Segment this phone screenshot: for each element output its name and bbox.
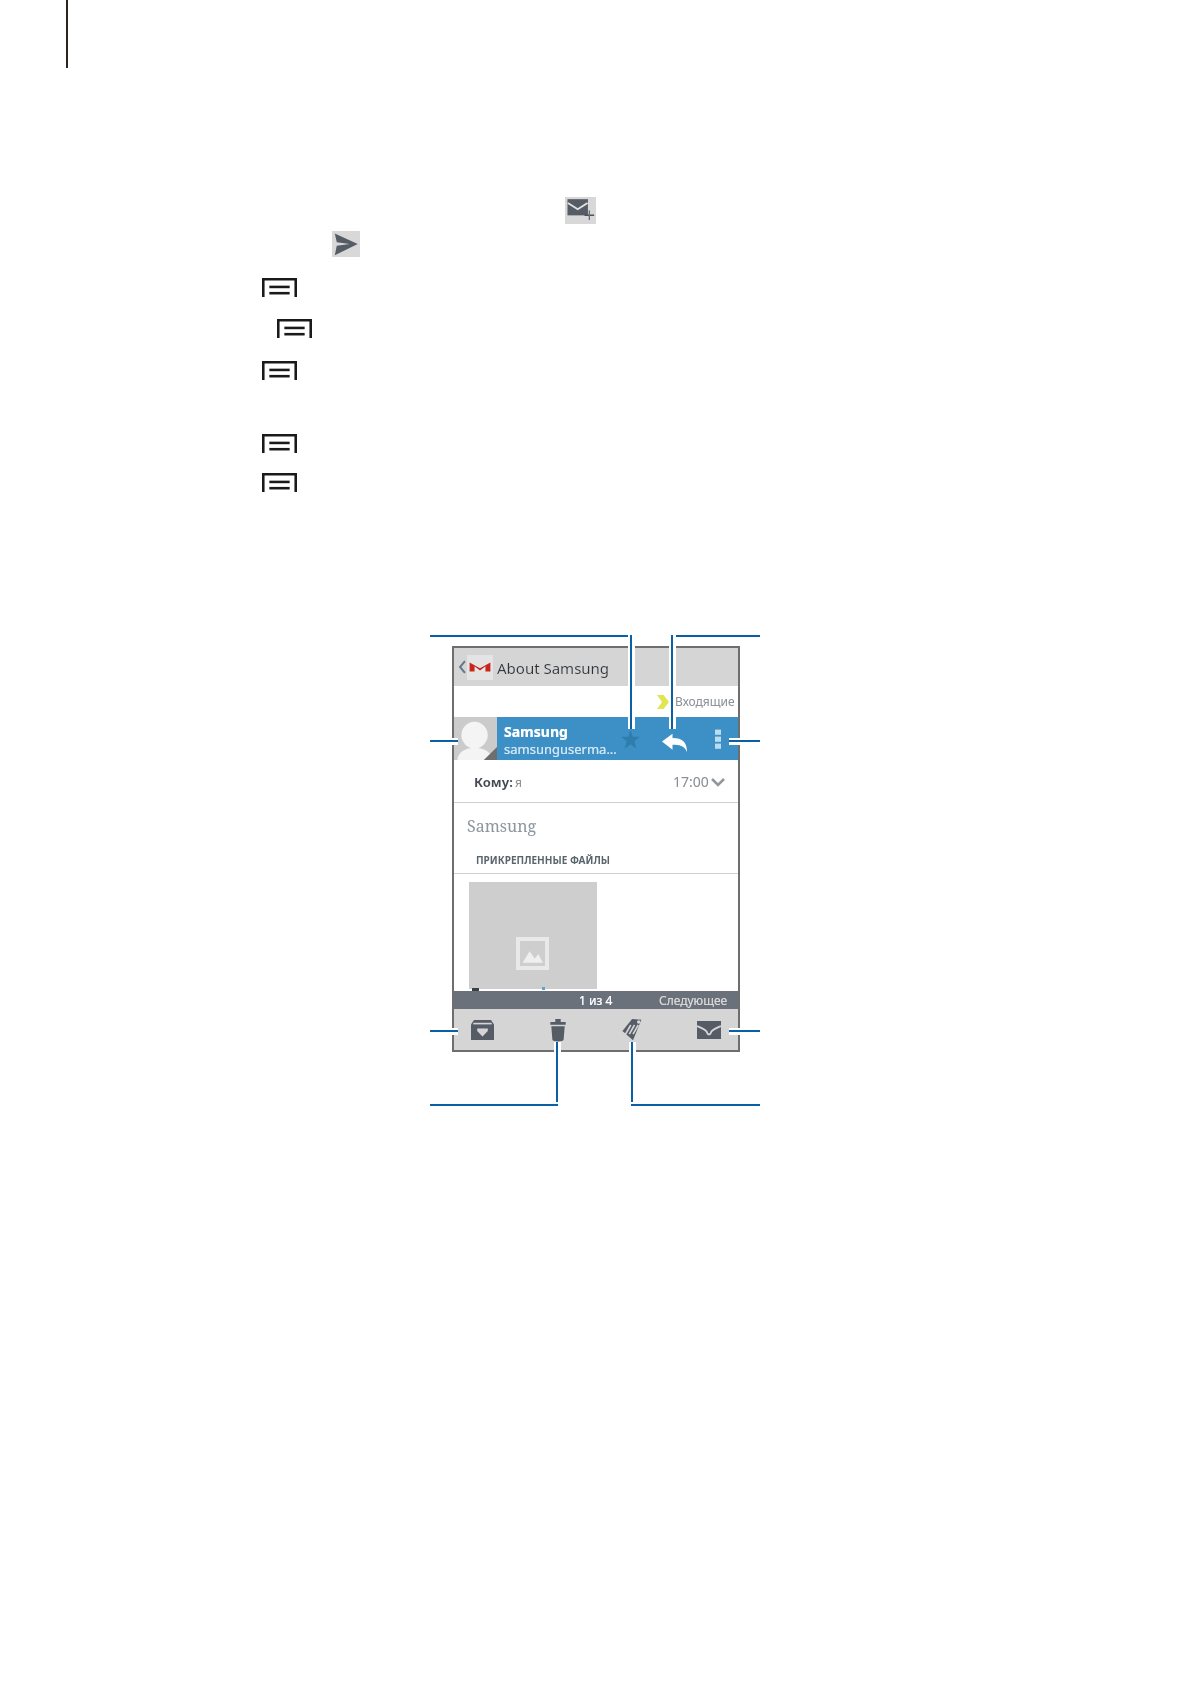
button[interactable]: Menu key [262, 473, 297, 492]
button[interactable]: More options [709, 725, 727, 752]
button[interactable]: Samsung [467, 815, 537, 837]
staticText: Следующее [659, 992, 728, 1008]
button[interactable]: Gmail [467, 655, 493, 680]
staticText: Samsung [504, 722, 568, 741]
button[interactable]: Menu key [262, 434, 297, 453]
staticText: ПРИКРЕПЛЕННЫЕ ФАЙЛЫ [476, 853, 610, 867]
button[interactable]: Compose email [565, 197, 596, 224]
button[interactable]: Menu key [262, 361, 297, 380]
staticText: Кому: [474, 773, 513, 791]
button[interactable]: Mark as unread [680, 1014, 738, 1046]
button[interactable]: Delete [529, 1014, 587, 1046]
button[interactable]: Change labels [604, 1014, 662, 1046]
button[interactable]: Кому: [453, 760, 739, 802]
staticText: samsunguserma... [504, 740, 617, 758]
staticText: я [515, 774, 522, 790]
button[interactable]: Входящие [675, 693, 735, 709]
staticText: About Samsung [497, 658, 610, 678]
staticText: 17:00 [673, 772, 709, 791]
button[interactable]: Star [618, 726, 643, 751]
button[interactable]: Archive [453, 1014, 511, 1046]
button[interactable]: Reply [660, 730, 688, 755]
button[interactable]: Menu key [277, 319, 312, 338]
button[interactable]: Send [332, 231, 360, 257]
button[interactable] [469, 882, 597, 989]
button[interactable]: Navigate up [455, 657, 469, 677]
staticText: 1 из 4 [579, 992, 613, 1008]
button[interactable]: Menu key [262, 278, 297, 297]
button[interactable]: Contact photo [453, 717, 497, 760]
